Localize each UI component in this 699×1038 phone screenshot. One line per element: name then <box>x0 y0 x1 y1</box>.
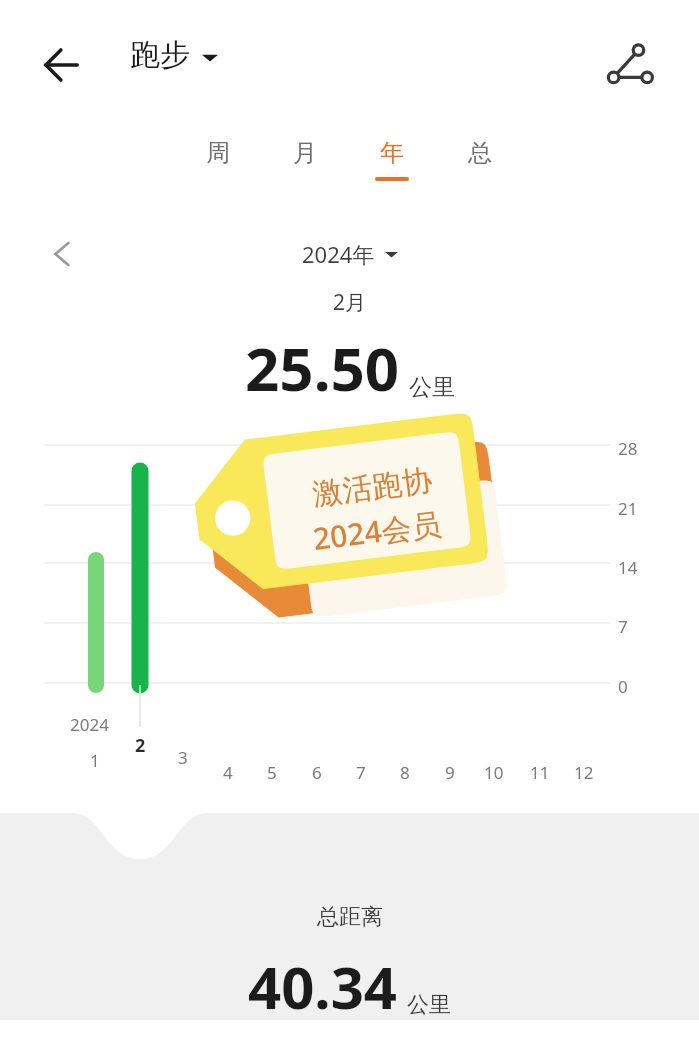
staticText: 40.34 <box>248 947 398 1026</box>
staticText: 3 <box>178 746 188 769</box>
staticText: 21 <box>618 497 638 520</box>
button[interactable]: 6 <box>299 761 335 784</box>
staticText: 1 <box>90 749 100 772</box>
staticText: 9 <box>445 761 455 784</box>
staticText: 跑步 <box>130 36 190 74</box>
staticText: 总距离 <box>317 903 383 931</box>
button[interactable]: 12 <box>566 761 602 784</box>
button[interactable]: 周 <box>184 138 252 204</box>
staticText: 0 <box>618 675 628 698</box>
button[interactable]: 跑步 <box>130 36 218 74</box>
staticText: 年 <box>380 138 404 168</box>
staticText: 5 <box>267 761 277 784</box>
button[interactable]: 9 <box>432 761 468 784</box>
staticText: 7 <box>618 615 628 638</box>
button[interactable]: 年 <box>358 138 426 204</box>
button[interactable]: 激活跑协 2024会员 <box>200 427 510 642</box>
staticText: 2024会员 <box>311 503 444 559</box>
button[interactable]: 月 <box>271 138 339 204</box>
staticText: 激活跑协 <box>310 461 434 514</box>
button[interactable]: 5 <box>254 761 290 784</box>
staticText: 14 <box>618 556 638 579</box>
staticText: 11 <box>530 761 550 784</box>
button[interactable]: 7 <box>343 761 379 784</box>
staticText: 总 <box>468 138 492 168</box>
staticText: 周 <box>206 138 230 168</box>
staticText: 公里 <box>409 373 455 402</box>
button[interactable]: 10 <box>476 761 512 784</box>
button[interactable]: 4 <box>210 761 246 784</box>
staticText: 7 <box>356 761 366 784</box>
staticText: 8 <box>400 761 410 784</box>
staticText: 6 <box>312 761 322 784</box>
button[interactable]: 3 <box>165 746 201 769</box>
staticText: 月 <box>293 138 317 168</box>
button[interactable]: Back <box>34 38 88 92</box>
staticText: 10 <box>484 761 504 784</box>
staticText: 4 <box>223 761 233 784</box>
staticText: 公里 <box>407 991 451 1019</box>
staticText: 2024年 <box>302 239 375 269</box>
button[interactable]: 11 <box>522 761 558 784</box>
staticText: 28 <box>618 437 638 460</box>
button[interactable]: 1 <box>77 749 113 772</box>
staticText: 25.50 <box>245 327 400 409</box>
staticText: 2月 <box>0 288 699 317</box>
button[interactable]: 总 <box>446 138 514 204</box>
button[interactable]: 8 <box>387 761 423 784</box>
button[interactable]: 2024年 <box>302 239 398 269</box>
staticText: 2024 <box>70 713 109 736</box>
button[interactable]: 2 <box>122 733 158 758</box>
staticText: 12 <box>574 761 594 784</box>
button[interactable]: Previous year <box>34 234 82 274</box>
button[interactable]: Share <box>600 34 662 96</box>
staticText: 2 <box>135 733 146 758</box>
